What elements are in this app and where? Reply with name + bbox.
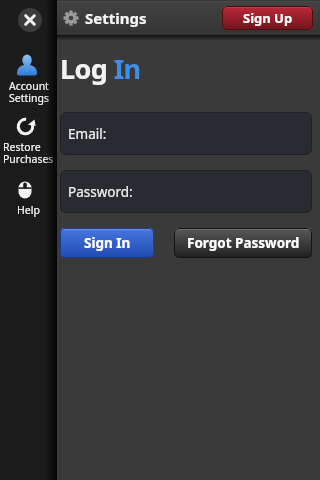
staticText: Sign In <box>84 234 131 252</box>
staticText: Log In <box>60 50 141 87</box>
button[interactable]: Email: <box>60 112 312 155</box>
button[interactable]: Account Settings <box>0 54 57 105</box>
staticText: Password: <box>68 183 133 201</box>
staticText: Help <box>17 203 40 217</box>
button[interactable]: Restore Purchases <box>0 117 57 166</box>
staticText: Settings <box>85 8 147 28</box>
staticText: Restore Purchases <box>3 140 54 166</box>
button[interactable]: Help <box>0 181 57 217</box>
button[interactable]: Sign In <box>60 228 154 258</box>
staticText: Account Settings <box>9 79 49 105</box>
button[interactable] <box>18 8 42 32</box>
button[interactable]: Forgot Password <box>174 228 312 258</box>
button[interactable]: Password: <box>60 170 312 213</box>
staticText: Sign Up <box>243 9 293 27</box>
staticText: Email: <box>68 125 107 143</box>
button[interactable]: Sign Up <box>222 6 313 30</box>
staticText: Forgot Password <box>187 234 300 252</box>
